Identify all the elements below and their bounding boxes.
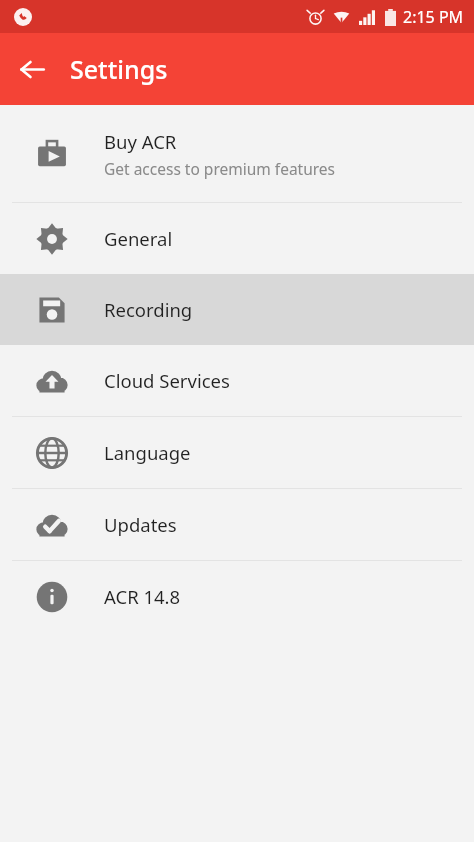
staticText: Recording (104, 297, 193, 322)
button[interactable]: Updates (0, 489, 474, 560)
button[interactable]: Cloud Services (0, 345, 474, 416)
button[interactable]: Recording (0, 274, 474, 345)
staticText: ACR 14.8 (104, 584, 181, 609)
staticText: Updates (104, 512, 177, 537)
staticText: 2:15 PM (403, 6, 464, 28)
staticText: Settings (70, 52, 168, 86)
button[interactable]: ACR 14.8 (0, 561, 474, 632)
staticText: Buy ACR (104, 129, 177, 154)
staticText: Cloud Services (104, 368, 230, 393)
staticText: Language (104, 440, 191, 465)
button[interactable]: General (0, 203, 474, 274)
button[interactable]: Back (8, 45, 56, 93)
staticText: General (104, 226, 173, 251)
button[interactable]: Buy ACR (0, 105, 474, 202)
button[interactable]: Language (0, 417, 474, 488)
staticText: Get access to premium features (104, 158, 336, 179)
